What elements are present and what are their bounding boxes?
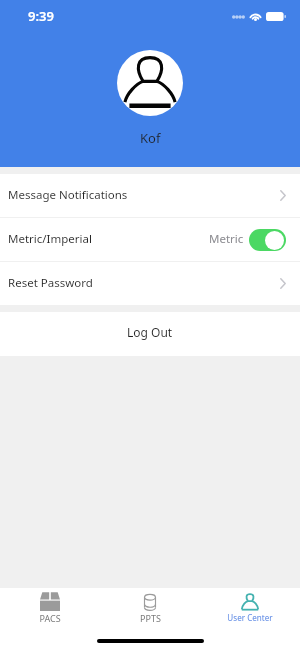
staticText: Kof — [140, 129, 161, 147]
button[interactable]: User Center — [200, 588, 300, 634]
staticText: Message Notifications — [8, 187, 128, 203]
button[interactable]: PACS — [0, 588, 100, 634]
staticText: PACS — [39, 612, 61, 624]
staticText: Metric — [209, 231, 244, 247]
button[interactable]: Reset Password — [0, 262, 300, 305]
button[interactable]: Metric units toggle — [249, 229, 286, 251]
staticText: Metric/Imperial — [8, 231, 92, 247]
staticText: Reset Password — [8, 275, 93, 291]
staticText: Log Out — [127, 324, 173, 340]
staticText: 9:39 — [28, 7, 54, 25]
staticText: User Center — [227, 612, 273, 623]
button[interactable]: Message Notifications — [0, 174, 300, 217]
button[interactable]: PPTS — [100, 588, 200, 634]
button[interactable]: Log Out — [0, 312, 300, 356]
staticText: PPTS — [140, 612, 161, 624]
button[interactable]: Profile photo — [117, 50, 183, 116]
